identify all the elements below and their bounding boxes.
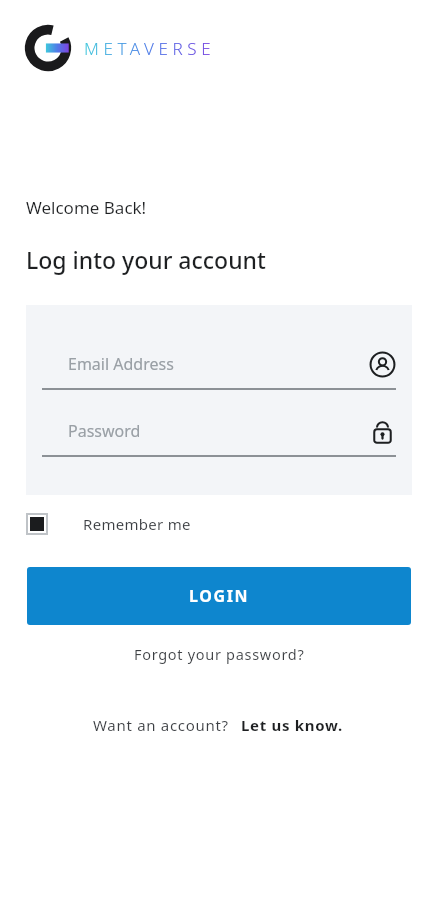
staticText: Want an account? <box>93 715 229 735</box>
button[interactable]: Let us know. <box>239 711 345 739</box>
button[interactable]: Email Address <box>42 347 396 390</box>
other: Account <box>369 351 396 378</box>
staticText: Remember me <box>83 514 191 534</box>
staticText: LOGIN <box>189 585 250 607</box>
button[interactable]: LOGIN <box>27 567 411 625</box>
staticText: METAVERSE <box>84 37 216 60</box>
staticText: Forgot your password? <box>134 644 305 664</box>
staticText: Welcome Back! <box>26 196 147 219</box>
staticText: Password <box>68 420 141 442</box>
button[interactable]: Password <box>42 414 396 457</box>
button[interactable]: Forgot your password? <box>122 639 317 669</box>
staticText: Log into your account <box>26 244 266 275</box>
staticText: Let us know. <box>241 715 343 735</box>
button[interactable]: Remember me <box>26 509 191 539</box>
other: Password <box>369 418 396 445</box>
staticText: Email Address <box>68 353 174 375</box>
